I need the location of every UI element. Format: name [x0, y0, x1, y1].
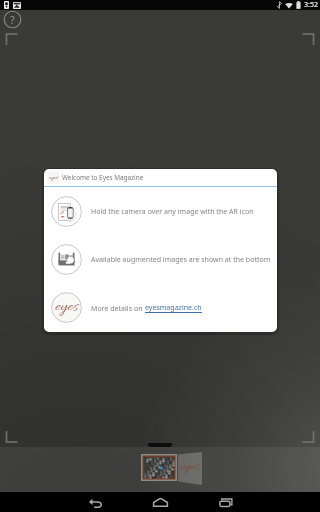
staticText: eyes: [180, 458, 199, 475]
button[interactable]: Back: [62, 492, 128, 512]
button[interactable]: Magazine cover: [141, 454, 177, 481]
staticText: eyes: [55, 296, 78, 317]
button[interactable]: Collapse panel: [148, 443, 172, 447]
button[interactable]: Recent apps: [193, 492, 258, 512]
staticText: Hold the camera over any image with the …: [91, 206, 254, 216]
button[interactable]: Hold the camera over any image with the …: [44, 187, 277, 235]
button[interactable]: Help: [3, 10, 22, 29]
button[interactable]: eyes: [44, 283, 277, 331]
staticText: ?: [10, 12, 15, 27]
staticText: eyes: [49, 173, 59, 182]
staticText: More details on: [91, 303, 145, 313]
staticText: Available augmented images are shown at …: [91, 254, 271, 264]
button[interactable]: Eyes Magazine: [178, 452, 202, 485]
button[interactable]: eyesmagazine.ch: [145, 302, 202, 313]
button[interactable]: Home: [128, 492, 193, 512]
staticText: 3:52: [304, 0, 318, 10]
button[interactable]: Available augmented images are shown at …: [44, 235, 277, 283]
staticText: eyesmagazine.ch: [145, 302, 202, 312]
staticText: Welcome to Eyes Magazine: [62, 173, 144, 182]
